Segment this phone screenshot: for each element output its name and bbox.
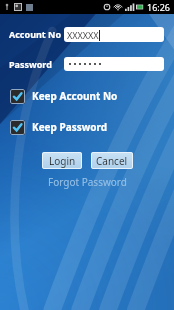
other: Wi-Fi xyxy=(114,3,122,11)
staticText: XXXXXX xyxy=(67,29,99,41)
staticText: Keep Password xyxy=(32,120,108,134)
button[interactable]: Forgot Password xyxy=(42,173,133,191)
other: Screenshot xyxy=(14,3,22,11)
other: Alarm xyxy=(103,3,111,11)
staticText: Account No xyxy=(9,28,64,40)
staticText: Login xyxy=(49,154,76,168)
staticText: Password xyxy=(9,58,64,70)
staticText: 16:26 xyxy=(147,1,171,13)
button[interactable] xyxy=(64,57,164,71)
button[interactable]: Cancel xyxy=(91,152,133,169)
staticText: Cancel xyxy=(96,154,128,168)
button[interactable]: Keep Account No xyxy=(0,86,174,106)
other: Signal xyxy=(125,3,133,11)
staticText: Keep Account No xyxy=(32,89,118,103)
staticText: Forgot Password xyxy=(48,175,127,189)
other: USB xyxy=(4,4,10,10)
other: Battery xyxy=(136,3,144,11)
button[interactable]: XXXXXX xyxy=(64,27,164,42)
button[interactable]: Login xyxy=(42,152,82,169)
button[interactable]: Keep Password xyxy=(0,117,174,137)
